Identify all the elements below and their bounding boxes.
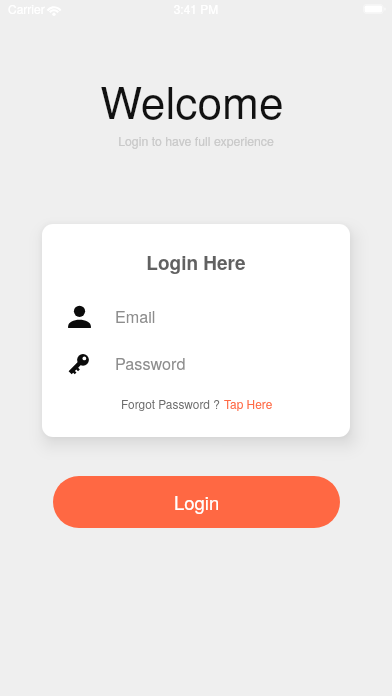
- staticText: 3:41 PM: [0, 0, 392, 17]
- staticText: Password: [115, 351, 186, 374]
- button[interactable]: Password: [67, 350, 325, 376]
- staticText: Email: [115, 304, 156, 327]
- staticText: Login Here: [42, 249, 350, 276]
- button[interactable]: Tap Here: [224, 395, 273, 412]
- staticText: Carrier: [8, 0, 45, 17]
- button[interactable]: Email: [67, 303, 325, 329]
- staticText: Login: [174, 489, 220, 515]
- staticText: Welcome: [0, 68, 388, 131]
- staticText: Login to have full experience: [0, 132, 392, 150]
- button[interactable]: Login: [53, 476, 340, 528]
- staticText: Tap Here: [224, 395, 273, 412]
- staticText: Forgot Password ?: [121, 395, 224, 412]
